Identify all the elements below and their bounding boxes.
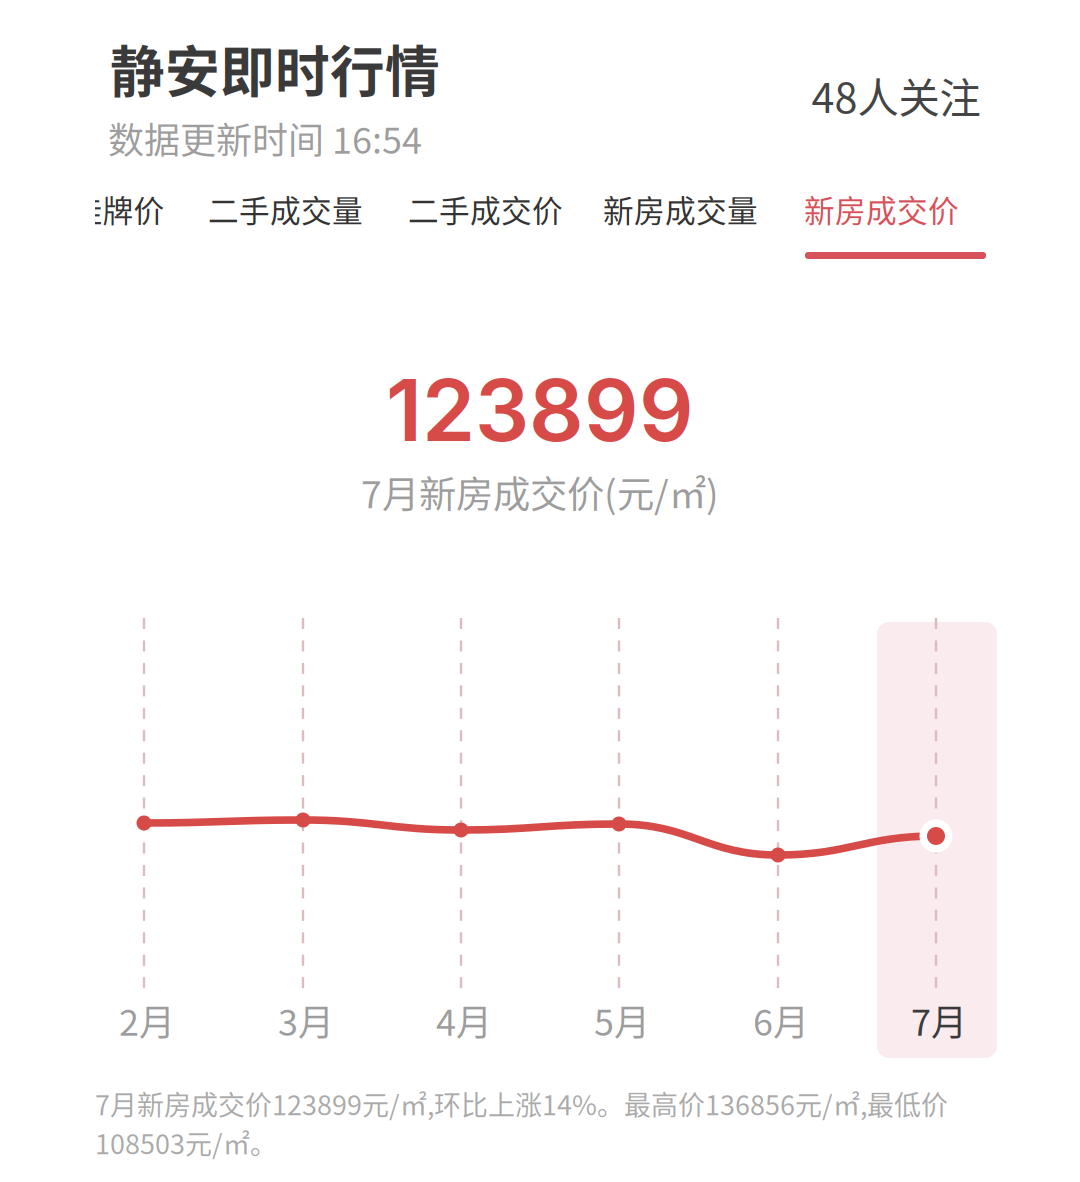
staticText: 新房成交量 <box>603 187 758 231</box>
staticText: 7月 <box>911 994 967 1046</box>
staticText: 7月新房成交价(元/㎡) <box>361 465 719 519</box>
staticText: 3月 <box>278 994 334 1046</box>
staticText: 二手成交价 <box>408 187 563 231</box>
button[interactable]: 新房成交价 <box>805 186 958 232</box>
button[interactable]: 新房成交量 <box>604 186 757 232</box>
staticText: 挂牌价 <box>71 187 164 231</box>
button[interactable]: 挂牌价 <box>72 186 164 232</box>
staticText: 5月 <box>594 994 650 1046</box>
staticText: 4月 <box>436 994 492 1046</box>
button[interactable]: 二手成交量 <box>209 186 362 232</box>
staticText: 6月 <box>753 994 809 1046</box>
staticText: 123899 <box>386 358 694 462</box>
staticText: 二手成交量 <box>208 187 363 231</box>
staticText: 48人关注 <box>811 65 980 125</box>
staticText: 数据更新时间 16:54 <box>108 112 422 164</box>
button[interactable]: 48人关注 <box>788 64 1004 126</box>
staticText: 新房成交价 <box>804 187 959 231</box>
staticText: 静安即时行情 <box>110 28 440 107</box>
staticText: 7月新房成交价123899元/㎡,环比上涨14%。最高价136856元/㎡,最低… <box>95 1084 948 1162</box>
button[interactable]: 二手成交价 <box>409 186 562 232</box>
staticText: 2月 <box>119 994 175 1046</box>
